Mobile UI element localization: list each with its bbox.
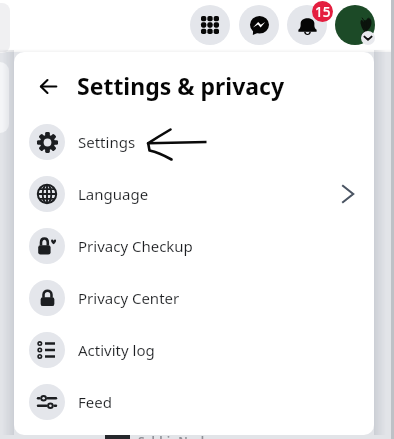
button[interactable]: Privacy Checkup <box>14 220 374 272</box>
button[interactable]: Language <box>14 168 374 220</box>
button[interactable]: Your profile <box>335 5 375 45</box>
staticText: Sabbir Nasha <box>138 433 216 439</box>
staticText: Language <box>78 184 149 204</box>
button[interactable]: Back <box>33 71 63 101</box>
staticText: Privacy Center <box>78 288 180 308</box>
staticText: Settings <box>78 132 136 152</box>
button[interactable]: Privacy Center <box>14 272 374 324</box>
button[interactable]: Settings <box>14 116 374 168</box>
staticText: Privacy Checkup <box>78 236 193 256</box>
staticText: Settings & privacy <box>77 70 285 101</box>
button[interactable]: Messenger <box>239 5 279 45</box>
button[interactable]: Activity log <box>14 324 374 376</box>
staticText: 15 <box>315 3 331 21</box>
button[interactable]: Feed <box>14 376 374 428</box>
staticText: Feed <box>78 392 112 412</box>
button[interactable]: Menu <box>190 5 230 45</box>
button[interactable]: Notifications <box>287 5 327 45</box>
staticText: Activity log <box>78 340 155 360</box>
